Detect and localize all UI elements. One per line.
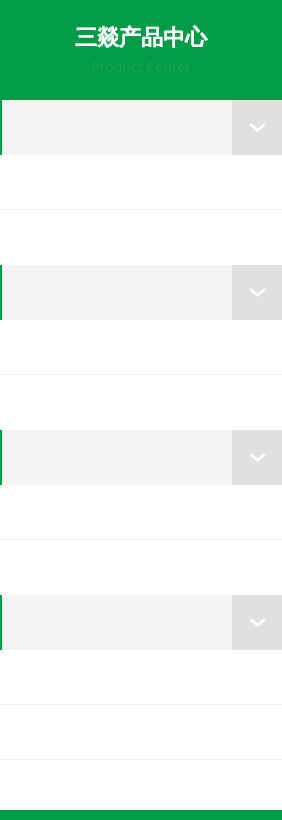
button[interactable]: Expand category <box>232 100 282 155</box>
staticText: 三燚产品中心 <box>75 24 207 52</box>
button[interactable]: Expand category <box>232 595 282 650</box>
button[interactable]: Expand category <box>0 595 282 650</box>
staticText: Product Center <box>91 57 191 76</box>
button[interactable]: Expand category <box>0 100 282 155</box>
button[interactable]: Expand category <box>0 265 282 320</box>
button[interactable]: Expand category <box>0 430 282 485</box>
button[interactable]: Expand category <box>232 430 282 485</box>
button[interactable]: Expand category <box>232 265 282 320</box>
